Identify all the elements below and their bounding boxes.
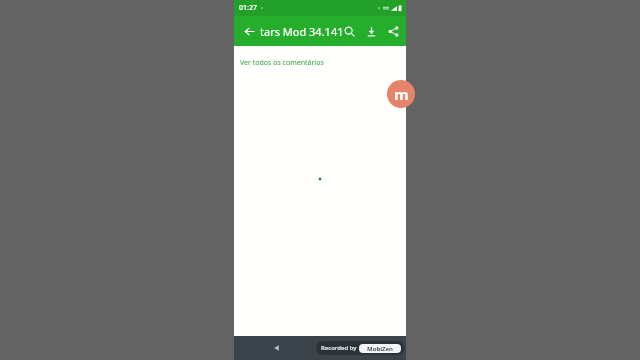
staticText: 01:27	[239, 3, 257, 13]
button[interactable]: Download	[360, 20, 382, 42]
button[interactable]: Back	[268, 339, 286, 357]
button[interactable]: Profile badge	[387, 80, 415, 108]
button[interactable]: Back	[238, 20, 260, 42]
staticText: MobiZen	[367, 345, 393, 353]
button[interactable]: Share	[382, 20, 404, 42]
button[interactable]: Ver todos os comentários	[240, 58, 324, 68]
staticText: tars Mod 34.141	[260, 24, 344, 39]
button[interactable]: Search	[338, 20, 360, 42]
staticText: m	[394, 84, 409, 104]
staticText: Recorded by	[321, 344, 357, 352]
